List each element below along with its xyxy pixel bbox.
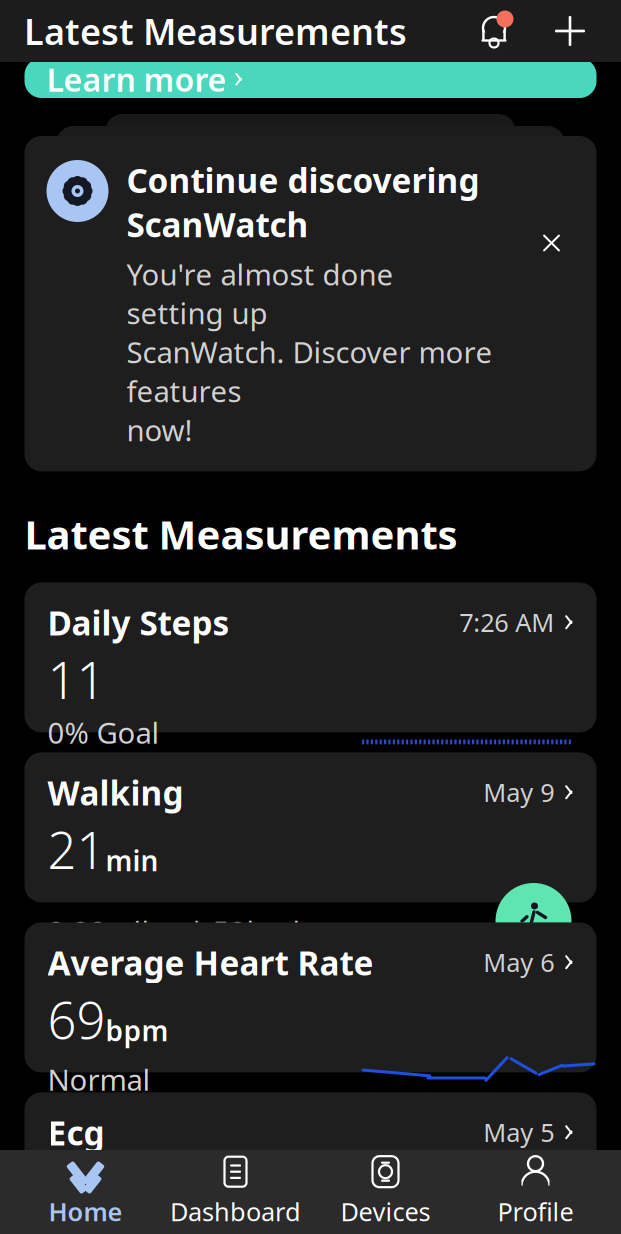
staticText: May 6: [483, 945, 554, 979]
staticText: 69: [47, 986, 105, 1053]
staticText: You're almost done setting up ScanWatch.…: [126, 254, 492, 449]
staticText: 21: [47, 816, 105, 883]
staticText: Walking: [47, 770, 183, 815]
staticText: Profile: [497, 1195, 573, 1228]
staticText: Latest Measurements: [24, 7, 407, 55]
button[interactable]: Dashboard: [160, 1150, 310, 1234]
button[interactable]: Walking: [24, 752, 596, 902]
button[interactable]: Home: [10, 1150, 160, 1234]
staticText: Continue discovering ScanWatch: [126, 158, 479, 246]
button[interactable]: Dismiss: [528, 220, 574, 266]
staticText: May 5: [483, 1115, 554, 1149]
button[interactable]: Daily Steps: [24, 582, 596, 732]
staticText: Latest Measurements: [24, 507, 457, 560]
button[interactable]: Learn more: [24, 58, 596, 98]
staticText: Home: [48, 1195, 122, 1228]
staticText: 0.99miles | 59kcal: [47, 912, 300, 951]
button[interactable]: Ecg: [24, 1092, 596, 1234]
staticText: Learn more: [46, 58, 226, 100]
staticText: Ecg: [47, 1110, 104, 1155]
button[interactable]: Profile: [460, 1150, 610, 1234]
staticText: 73: [47, 1156, 105, 1223]
staticText: May 9: [483, 775, 554, 809]
staticText: 11: [47, 646, 105, 713]
staticText: bpm: [105, 1182, 168, 1219]
button[interactable]: Notifications: [469, 6, 519, 56]
button[interactable]: Add: [545, 6, 595, 56]
staticText: Normal: [47, 1060, 150, 1099]
staticText: Dashboard: [170, 1195, 301, 1228]
staticText: Daily Steps: [47, 600, 229, 645]
button[interactable]: Average Heart Rate: [24, 922, 596, 1072]
button[interactable]: Devices: [310, 1150, 460, 1234]
staticText: min: [105, 842, 158, 879]
staticText: Average Heart Rate: [47, 940, 373, 985]
staticText: 0% Goal: [47, 713, 159, 752]
staticText: bpm: [105, 1012, 168, 1049]
staticText: Devices: [340, 1195, 430, 1228]
staticText: 7:26 AM: [459, 605, 554, 639]
